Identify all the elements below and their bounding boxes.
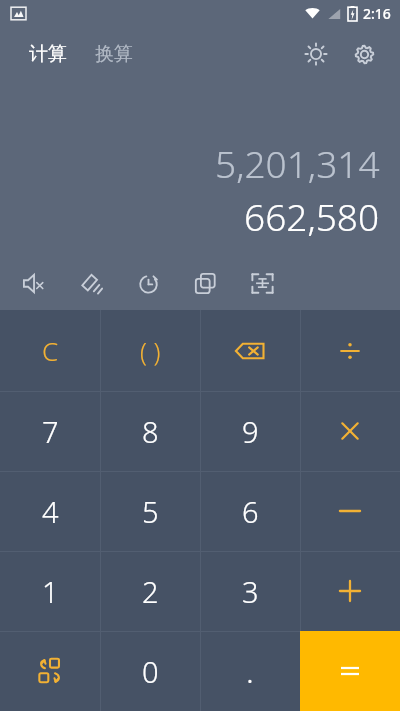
button[interactable]: Backspace <box>200 310 300 391</box>
staticText: 5,201,314 <box>215 138 380 188</box>
button[interactable]: 0 <box>100 631 200 711</box>
button[interactable]: ( ) <box>100 310 200 391</box>
button[interactable]: 5 <box>100 471 200 551</box>
button[interactable]: 换算 <box>90 34 138 74</box>
staticText: 6 <box>242 492 259 531</box>
button[interactable]: Vibrate <box>63 260 120 306</box>
staticText: 计算 <box>29 42 67 66</box>
staticText: ( ) <box>140 334 161 368</box>
button[interactable]: 1 <box>0 551 100 631</box>
staticText: 7 <box>42 412 59 451</box>
button[interactable]: 2 <box>100 551 200 631</box>
button[interactable]: 8 <box>100 391 200 471</box>
staticText: 0 <box>142 652 159 691</box>
button[interactable]: Multiply <box>300 391 400 471</box>
button[interactable]: Scan <box>234 260 291 306</box>
staticText: 4 <box>42 492 59 531</box>
button[interactable]: 7 <box>0 391 100 471</box>
button[interactable]: 3 <box>200 551 300 631</box>
staticText: 8 <box>142 412 159 451</box>
staticText: 2:16 <box>363 4 391 23</box>
staticText: 换算 <box>95 42 133 66</box>
button[interactable]: Convert <box>0 631 100 711</box>
button[interactable]: 6 <box>200 471 300 551</box>
staticText: 1 <box>42 572 59 611</box>
staticText: 9 <box>242 412 259 451</box>
button[interactable]: Divide <box>300 310 400 391</box>
button[interactable]: C <box>0 310 100 391</box>
button[interactable]: History <box>120 260 177 306</box>
button[interactable]: Brightness <box>294 32 338 76</box>
staticText: . <box>246 649 254 693</box>
button[interactable]: Mute <box>6 260 63 306</box>
button[interactable]: Equals <box>300 631 400 711</box>
staticText: C <box>42 333 59 368</box>
button[interactable]: . <box>200 631 300 711</box>
button[interactable]: Copy <box>177 260 234 306</box>
button[interactable]: 计算 <box>24 34 72 74</box>
button[interactable]: Plus <box>300 551 400 631</box>
button[interactable]: Settings <box>342 32 386 76</box>
staticText: 2 <box>142 572 159 611</box>
button[interactable]: 9 <box>200 391 300 471</box>
staticText: 3 <box>242 572 259 611</box>
button[interactable]: 4 <box>0 471 100 551</box>
staticText: 5 <box>142 492 159 531</box>
button[interactable]: Minus <box>300 471 400 551</box>
staticText: 662,580 <box>244 191 380 241</box>
